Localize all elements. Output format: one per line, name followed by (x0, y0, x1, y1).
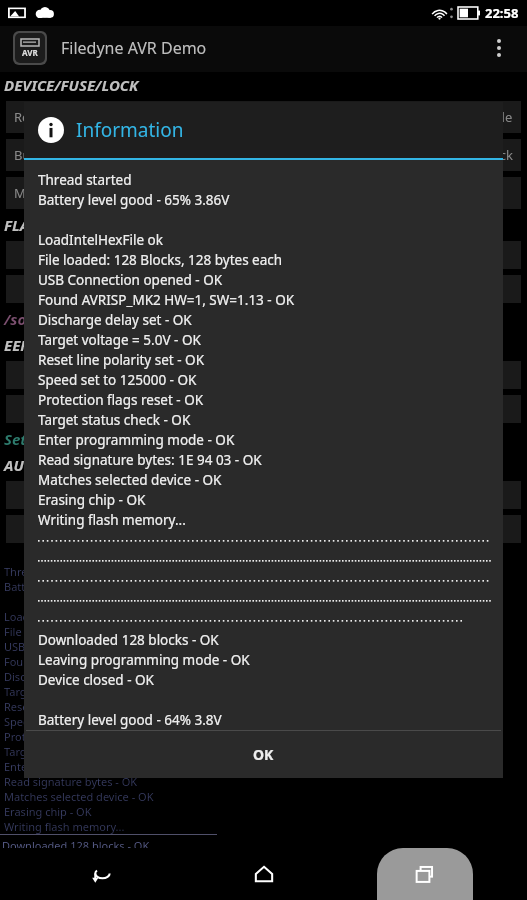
staticText: Burn Fuse & Lock bits (14, 146, 146, 164)
staticText: Filedyne AVR Demo (61, 37, 207, 59)
button[interactable]: OK (24, 731, 503, 778)
staticText: LoadIntelHexFile ok (4, 609, 106, 624)
staticText: Reset line polarity set - OK (4, 699, 140, 714)
staticText: Target voltage = 5.0V - OK (4, 684, 137, 699)
staticText: AUTO (4, 455, 43, 475)
staticText: USB Connection opened - OK (38, 271, 223, 289)
staticText: Battery level good - 65% 3.86V (4, 579, 160, 594)
staticText: Settings (4, 429, 63, 449)
staticText: Speed set to 125000 - OK (38, 371, 197, 389)
staticText: AVR (22, 47, 38, 58)
staticText: Target status check - OK (38, 411, 191, 429)
staticText: Matches selected device - OK (38, 471, 222, 489)
staticText: Discharge delay set - OK (38, 311, 192, 329)
staticText: OK (253, 745, 274, 764)
staticText: Read signature bytes - OK (4, 774, 138, 789)
staticText: Protection flags reset - OK (4, 729, 139, 744)
staticText: No Lock (464, 146, 513, 164)
staticText: Found AVRISP_MK2 HW=1 (4, 654, 138, 669)
staticText: Leaving programming mode - OK (2, 857, 175, 872)
staticText: Target status check - OK (4, 744, 129, 759)
staticText: Enter programming mode - OK (38, 431, 235, 449)
staticText: USB Connection opened - OK (4, 639, 154, 654)
staticText: Writing flash memory... (4, 819, 125, 834)
button[interactable]: Back (42, 848, 162, 900)
staticText: Erasing chip - OK (4, 804, 92, 819)
staticText: LoadIntelHexFile ok (38, 231, 163, 249)
staticText: Enable (471, 108, 513, 126)
staticText: Thread started (38, 171, 132, 189)
button[interactable]: Home (204, 848, 324, 900)
staticText: Protection flags reset - OK (38, 391, 204, 409)
staticText: File loaded: 128 Blocks, 128 bytes each (38, 251, 283, 269)
staticText: Discharge delay set - OK (4, 669, 130, 684)
staticText: DEVICE/FUSE/LOCK (4, 75, 139, 95)
button[interactable]: Recent apps (365, 848, 485, 900)
staticText: Leaving programming mode - OK (38, 651, 250, 669)
staticText: Battery level good - 64% 3.8V (38, 711, 222, 729)
staticText: Enter programming mode - OK (4, 759, 164, 774)
staticText: 22:58 (485, 4, 519, 22)
staticText: Found AVRISP_MK2 HW=1, SW=1.13 - OK (38, 291, 295, 309)
staticText: Downloaded 128 blocks - OK (2, 838, 150, 853)
staticText: Information (76, 117, 184, 143)
staticText: Thread started (4, 564, 81, 579)
staticText: Device closed - OK (38, 671, 154, 689)
staticText: Erasing chip - OK (38, 491, 146, 509)
staticText: FLASH (4, 215, 48, 235)
staticText: Target voltage = 5.0V - OK (38, 331, 201, 349)
staticText: Speed set to 125000 - OK (4, 714, 134, 729)
staticText: EEPROM (4, 335, 63, 355)
staticText: Matches selected device - OK (4, 789, 154, 804)
staticText: Writing flash memory... (38, 511, 186, 529)
staticText: Reset line polarity set - OK (38, 351, 204, 369)
staticText: Read Device Signature (14, 108, 151, 126)
button[interactable]: More options (477, 26, 521, 70)
staticText: Main Clock Source (14, 184, 126, 202)
staticText: File loaded: 128 Blocks (4, 624, 121, 639)
staticText: Battery level good - 65% 3.86V (38, 191, 230, 209)
staticText: /source/hex (4, 309, 89, 329)
staticText: Downloaded 128 blocks - OK (38, 631, 219, 649)
staticText: Read signature bytes: 1E 94 03 - OK (38, 451, 262, 469)
